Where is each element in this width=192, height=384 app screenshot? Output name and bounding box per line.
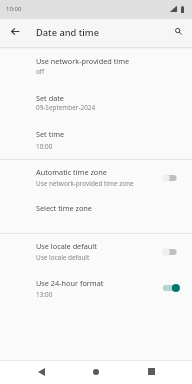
button[interactable]: Off	[158, 242, 186, 262]
button[interactable]	[0, 120, 192, 159]
button[interactable]: Recent apps	[139, 360, 163, 384]
staticText: Use locale default	[36, 241, 97, 251]
staticText: 09-September-2024	[36, 103, 96, 112]
button[interactable]: Home	[84, 360, 108, 384]
staticText: Use network-provided time	[36, 56, 130, 66]
staticText: Use network-provided time zone	[36, 179, 134, 188]
staticText: 10:00	[6, 5, 22, 13]
staticText: Set time	[36, 129, 65, 139]
button[interactable]	[0, 158, 192, 198]
staticText: Automatic time zone	[36, 167, 107, 177]
button[interactable]	[0, 84, 192, 122]
button[interactable]	[0, 269, 192, 308]
staticText: 13:00	[36, 290, 53, 299]
staticText: Select time zone	[36, 203, 92, 213]
staticText: Use 24-hour format	[36, 278, 104, 288]
button[interactable]: Search	[166, 21, 190, 45]
button[interactable]: On	[158, 278, 186, 298]
button[interactable]: Off	[158, 168, 186, 188]
staticText: off	[36, 67, 45, 76]
button[interactable]: Back	[29, 360, 53, 384]
staticText: 10:00	[36, 142, 53, 151]
button[interactable]	[0, 194, 192, 222]
button[interactable]: Navigate up	[2, 21, 27, 46]
staticText: Use locale default	[36, 253, 90, 262]
staticText: Set date	[36, 93, 64, 103]
button[interactable]	[0, 47, 192, 86]
staticText: Date and time	[36, 26, 99, 39]
button[interactable]	[0, 232, 192, 271]
